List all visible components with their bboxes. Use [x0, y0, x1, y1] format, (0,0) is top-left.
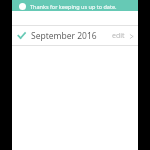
staticText: Thanks for keeping us up to date. [30, 3, 117, 10]
button[interactable]: September 2016 [12, 26, 138, 45]
staticText: September 2016 [31, 30, 97, 42]
staticText: edit [112, 31, 125, 41]
button[interactable]: Thanks for keeping us up to date [12, 0, 138, 11]
button[interactable]: edit [112, 31, 138, 41]
